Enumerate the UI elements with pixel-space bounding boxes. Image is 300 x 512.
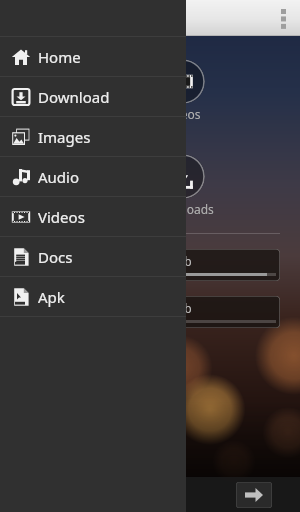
button[interactable]: Downloads <box>160 154 205 199</box>
button[interactable]: Videos <box>0 197 186 236</box>
button[interactable]: .51 Gb /13.16 Gb <box>92 249 280 281</box>
staticText: Apk <box>38 287 65 307</box>
staticText: Audio <box>38 167 80 187</box>
staticText: Videos <box>38 207 85 227</box>
button[interactable]: Apk <box>0 277 186 316</box>
button[interactable]: Audio <box>0 157 186 196</box>
staticText: .72 Gb /29.32 Gb <box>98 300 192 316</box>
staticText: Downloads <box>151 201 214 217</box>
staticText: Home <box>38 47 81 67</box>
staticText: .51 Gb /13.16 Gb <box>98 253 192 269</box>
button[interactable]: Docs <box>0 237 186 276</box>
button[interactable]: Download <box>0 77 186 116</box>
button[interactable]: More options <box>266 0 300 36</box>
staticText: Images <box>38 127 91 147</box>
button[interactable]: Videos <box>160 59 205 104</box>
button[interactable]: Images <box>0 117 186 156</box>
button[interactable]: Home <box>0 37 186 76</box>
staticText: Videos <box>163 106 201 122</box>
staticText: Download <box>38 87 110 107</box>
button[interactable]: Next <box>236 482 272 508</box>
button[interactable]: .72 Gb /29.32 Gb <box>92 296 280 328</box>
staticText: Docs <box>38 247 73 267</box>
